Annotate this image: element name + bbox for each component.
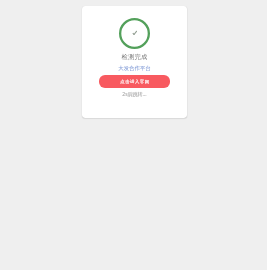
button[interactable]: 大发合作平台	[82, 63, 187, 73]
staticText: 大发合作平台	[118, 65, 151, 72]
staticText: 点击进入官网	[120, 79, 150, 84]
other: Success	[119, 18, 150, 49]
staticText: 2s后跳转...	[122, 91, 147, 98]
staticText: 检测完成	[121, 53, 148, 61]
button[interactable]: 点击进入官网	[99, 75, 170, 88]
